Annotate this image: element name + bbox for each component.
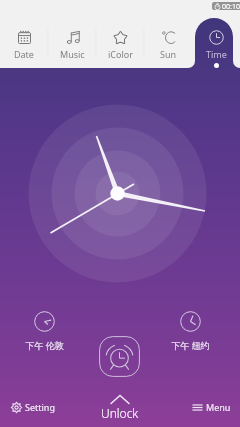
staticText: Date	[14, 48, 34, 60]
staticText: 下午 伦敦	[25, 339, 64, 351]
staticText: Sun	[160, 48, 177, 60]
button[interactable]: Setting	[0, 398, 61, 416]
button[interactable]: Alarm	[99, 336, 140, 377]
button[interactable]: Date	[0, 0, 48, 68]
button[interactable]: Menu	[186, 398, 240, 416]
button[interactable]: Unlock	[95, 394, 145, 421]
staticText: 下午 纽约	[171, 339, 210, 351]
button[interactable]: Sun	[144, 0, 192, 68]
button[interactable]: 下午 纽约	[160, 309, 220, 353]
staticText: Music	[60, 48, 85, 60]
staticText: 00:10	[222, 2, 240, 10]
button[interactable]: Time	[192, 0, 240, 80]
staticText: Time	[206, 48, 227, 60]
button[interactable]: 下午 伦敦	[14, 309, 74, 353]
staticText: Setting	[25, 401, 55, 413]
staticText: Unlock	[101, 405, 139, 421]
button[interactable]: Music	[48, 0, 96, 68]
staticText: Menu	[206, 401, 231, 413]
button[interactable]: iColor	[96, 0, 144, 68]
staticText: iColor	[108, 48, 133, 60]
